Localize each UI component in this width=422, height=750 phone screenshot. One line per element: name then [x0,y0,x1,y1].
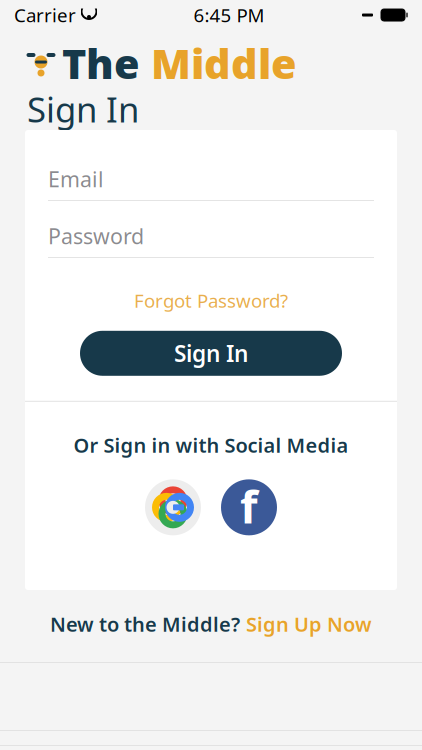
staticText: Or Sign in with Social Media [73,432,348,458]
button[interactable]: Forgot Password? [124,280,298,321]
staticText: 6:45 PM [193,3,264,27]
staticText: f [240,476,258,536]
button[interactable]: Sign in with Facebook [221,479,277,535]
staticText: Password [48,222,144,250]
button[interactable]: Sign In [80,331,342,376]
staticText: Middle [140,36,297,90]
staticText: Sign Up Now [246,611,372,637]
staticText: The [62,36,140,90]
staticText: Sign In [27,86,139,132]
staticText: Carrier [14,3,76,27]
staticText: Email [48,165,104,193]
button[interactable]: Sign in with Google [145,479,201,535]
staticText: New to the Middle? [50,611,240,637]
button[interactable]: New to the Middle? [0,602,422,646]
staticText: Forgot Password? [134,288,288,313]
staticText: Sign In [174,338,248,368]
